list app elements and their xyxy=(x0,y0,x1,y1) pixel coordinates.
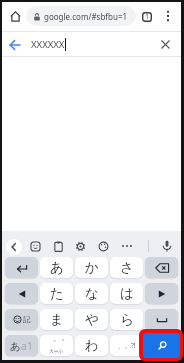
staticText: は xyxy=(120,285,134,302)
button[interactable] xyxy=(145,257,178,278)
staticText: 、。?! xyxy=(118,341,136,350)
staticText: 記 xyxy=(23,315,31,324)
staticText: google.com/#sbfbu=1 xyxy=(44,11,128,22)
staticText: ま xyxy=(50,311,64,328)
button[interactable]: は xyxy=(110,283,143,304)
button[interactable] xyxy=(6,239,22,255)
staticText: ら xyxy=(120,311,134,328)
staticText: 1 xyxy=(145,12,150,22)
button[interactable] xyxy=(73,239,87,253)
button[interactable]: あ xyxy=(40,257,73,278)
staticText: ゛゜ xyxy=(48,338,65,348)
button[interactable] xyxy=(8,9,22,23)
staticText: あ xyxy=(50,259,64,276)
button[interactable] xyxy=(161,9,175,23)
button[interactable] xyxy=(5,283,38,304)
button[interactable] xyxy=(5,257,38,278)
button[interactable] xyxy=(120,239,134,253)
button[interactable] xyxy=(51,239,65,253)
button[interactable]: あ xyxy=(5,335,38,356)
staticText: あ xyxy=(10,340,21,353)
staticText: や xyxy=(85,311,99,328)
button[interactable]: や xyxy=(75,309,108,330)
staticText: た xyxy=(50,285,64,302)
button[interactable]: ま xyxy=(40,309,73,330)
button[interactable]: た xyxy=(40,283,73,304)
button[interactable]: 1 xyxy=(141,11,153,23)
staticText: XXXXXX xyxy=(31,38,65,51)
button[interactable] xyxy=(96,239,110,253)
button[interactable] xyxy=(160,239,174,253)
button[interactable]: ゛゜ xyxy=(40,335,73,356)
staticText: か xyxy=(85,259,99,276)
button[interactable] xyxy=(145,283,178,304)
button[interactable] xyxy=(157,36,173,52)
button[interactable]: google.com/#sbfbu=1 xyxy=(26,6,136,26)
button[interactable] xyxy=(28,239,42,253)
staticText: な xyxy=(85,285,99,302)
button[interactable]: 記 xyxy=(5,309,38,330)
staticText: わ xyxy=(85,337,99,354)
staticText: a1 xyxy=(21,339,33,353)
button[interactable] xyxy=(7,37,23,53)
staticText: 大⇔小 xyxy=(49,348,64,354)
button[interactable]: な xyxy=(75,283,108,304)
button[interactable] xyxy=(145,309,178,330)
button[interactable]: ら xyxy=(110,309,143,330)
staticText: さ xyxy=(120,259,134,276)
button[interactable]: わ xyxy=(75,335,108,356)
button[interactable]: か xyxy=(75,257,108,278)
button[interactable]: さ xyxy=(110,257,143,278)
button[interactable] xyxy=(143,333,180,358)
button[interactable]: 、。?! xyxy=(110,335,143,356)
